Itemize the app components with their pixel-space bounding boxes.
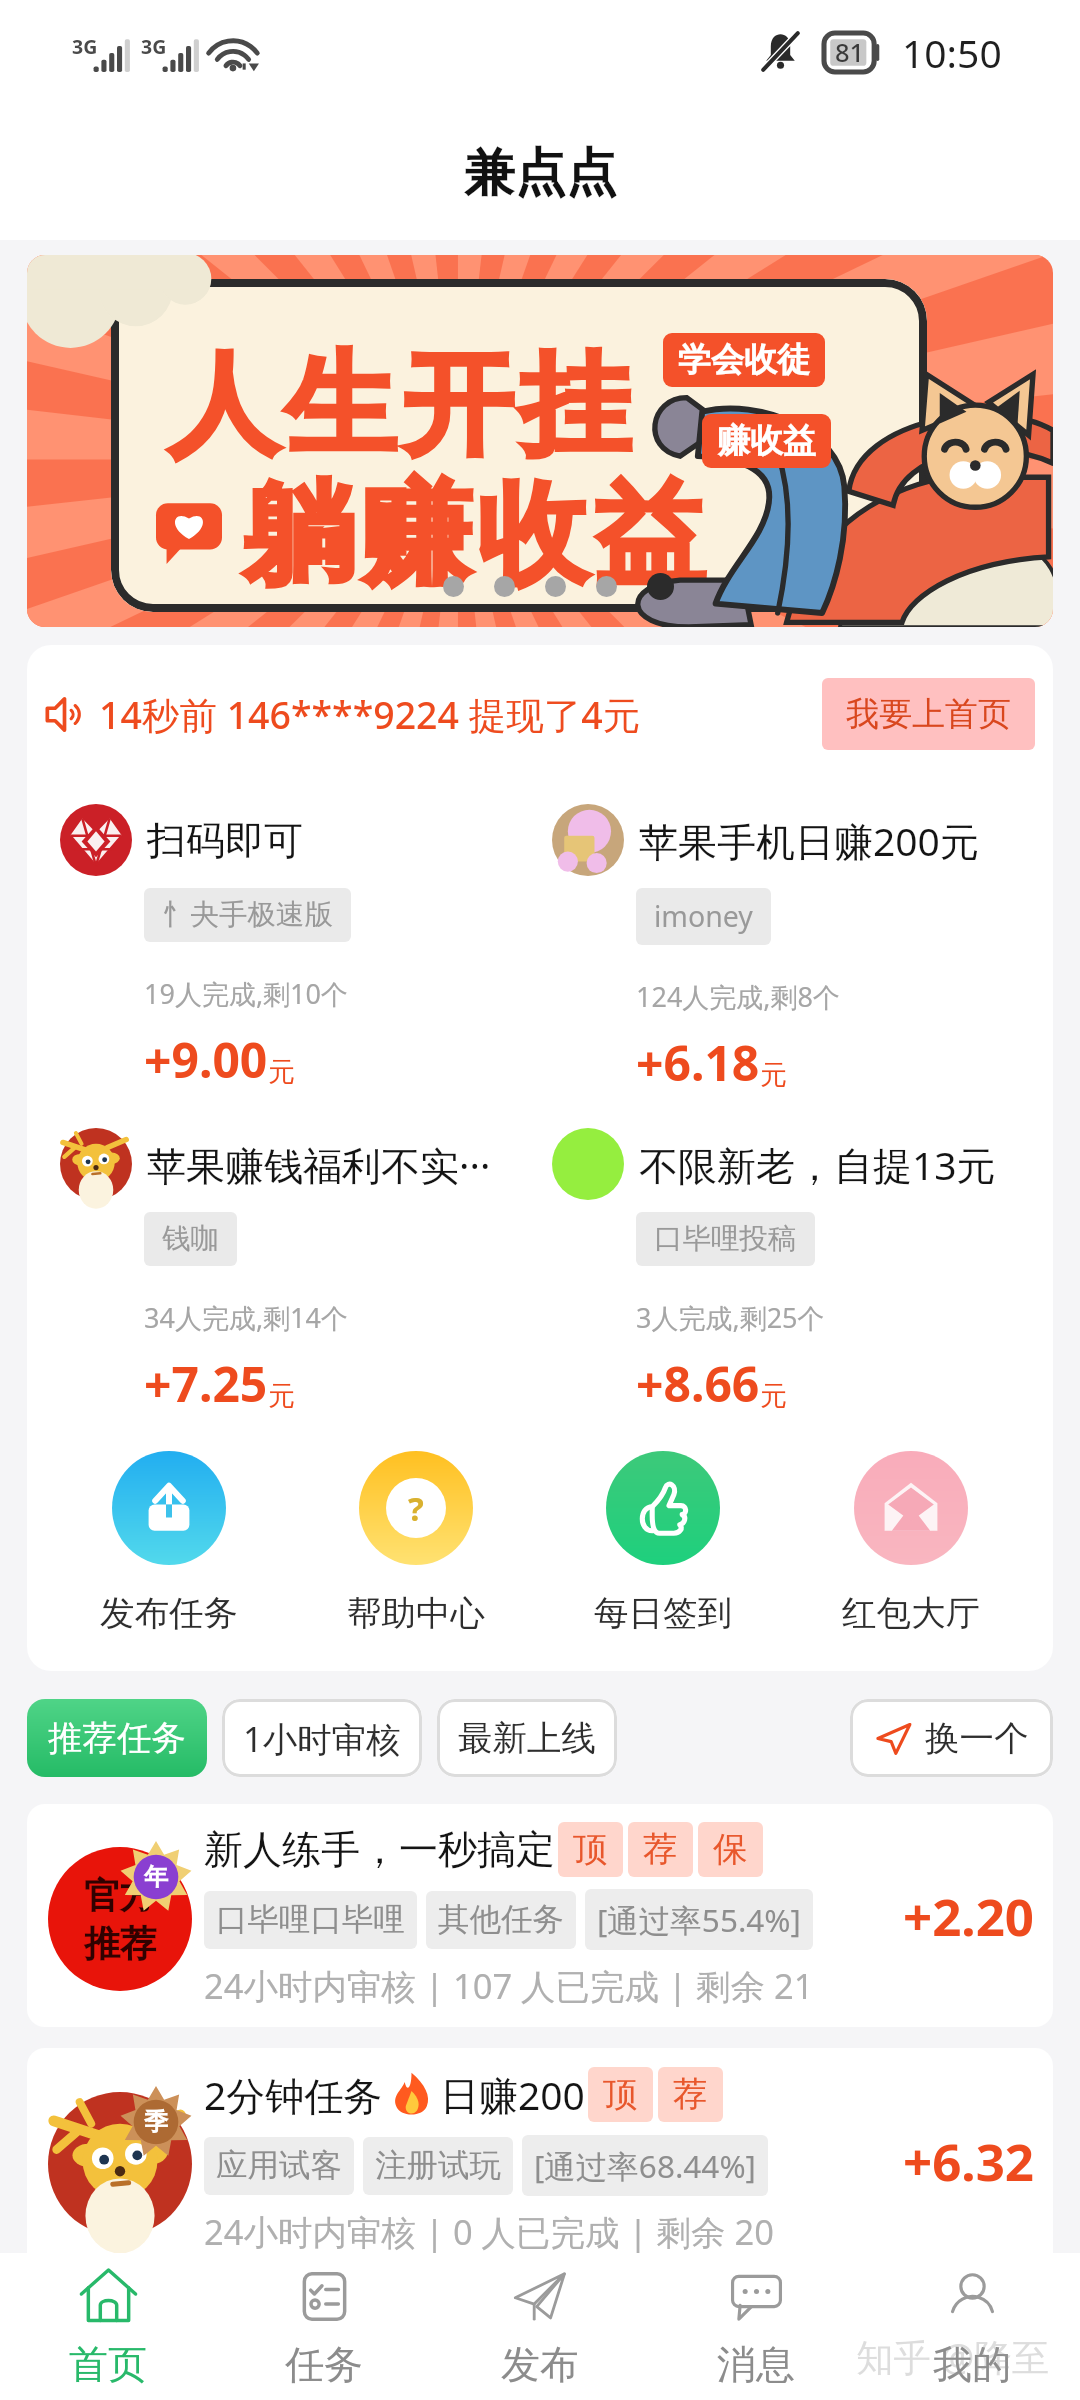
staticText: 苹果赚钱福利不实··· (147, 1138, 491, 1191)
button[interactable]: 苹果手机日赚200元 (519, 804, 1053, 1095)
button[interactable]: 苹果赚钱福利不实··· (27, 1128, 519, 1416)
staticText: 19人完成,剩10个 (144, 975, 349, 1012)
button[interactable]: 不限新老，自提13元 (519, 1128, 1053, 1416)
staticText: 钱咖 (162, 1221, 219, 1257)
staticText: 发布任务 (100, 1592, 238, 1635)
staticText: 荐 (673, 2073, 708, 2116)
other: Daily check in (606, 1451, 720, 1565)
staticText: 最新上线 (458, 1717, 596, 1760)
staticText: 帮助中心 (347, 1592, 485, 1635)
staticText: +7.25 (144, 1351, 268, 1416)
staticText: 知乎 @降至 (856, 2331, 1050, 2382)
staticText: 新人练手，一秒搞定 (204, 1825, 555, 1874)
staticText: 消息 (717, 2340, 795, 2389)
staticText: 人生开挂 (165, 336, 633, 476)
other: Publish task (112, 1451, 226, 1565)
staticText: imoney (654, 897, 753, 936)
staticText: 其他任务 (438, 1900, 564, 1940)
button[interactable]: 首页 (0, 2253, 216, 2400)
staticText: 3G (72, 33, 98, 60)
staticText: 34人完成,剩14个 (144, 1299, 349, 1336)
staticText: 赚收益 (717, 420, 816, 462)
staticText: 保 (713, 1828, 748, 1871)
staticText: 元 (760, 1379, 787, 1413)
staticText: 官方 (84, 1873, 156, 1918)
staticText: +6.32 (903, 2126, 1035, 2195)
staticText: 推荐任务 (48, 1717, 186, 1760)
staticText: 推荐 (84, 1921, 156, 1966)
button[interactable]: 我要上首页 (822, 678, 1035, 750)
staticText: 我的 (933, 2340, 1011, 2389)
staticText: 发布 (501, 2340, 579, 2389)
button[interactable]: 最新上线 (437, 1699, 617, 1777)
other: 发布 (509, 2265, 572, 2328)
staticText: +8.66 (636, 1351, 760, 1416)
button[interactable]: 官方 (27, 1804, 1053, 2027)
button[interactable]: 1小时审核 (222, 1699, 422, 1777)
button[interactable]: Red packet hall (787, 1451, 1035, 1635)
button[interactable]: 季 (27, 2048, 1053, 2273)
staticText: [通过率55.4%] (597, 1898, 801, 1941)
button[interactable]: 推荐任务 (27, 1699, 207, 1777)
staticText: 3G (141, 33, 167, 60)
staticText: 口毕哩投稿 (654, 1221, 797, 1257)
other: 消息 (725, 2265, 788, 2328)
button[interactable]: 我的 (864, 2253, 1080, 2400)
staticText: 元 (268, 1379, 295, 1413)
button[interactable]: 人生开挂 躺赚收益 横幅广告 (27, 255, 1053, 627)
staticText: 季 (144, 2107, 168, 2137)
staticText: 注册试玩 (375, 2146, 501, 2186)
staticText: ? (408, 1486, 424, 1531)
staticText: 24小时内审核 | 0 人已完成 | 剩余 20 (204, 2208, 775, 2255)
button[interactable]: 换一个 (850, 1699, 1053, 1777)
staticText: +9.00 (144, 1027, 268, 1092)
staticText: 日赚200 (440, 2068, 585, 2121)
other: 我的 (941, 2265, 1004, 2328)
staticText: 元 (760, 1058, 787, 1092)
staticText: 元 (268, 1055, 295, 1089)
staticText: 换一个 (925, 1717, 1029, 1760)
staticText: 3人完成,剩25个 (636, 1299, 825, 1336)
staticText: 学会收徒 (678, 339, 810, 381)
staticText: 苹果手机日赚200元 (639, 814, 979, 867)
button[interactable]: 发布 (432, 2253, 648, 2400)
button[interactable]: Publish task (45, 1451, 292, 1635)
staticText: 荐 (643, 1828, 678, 1871)
staticText: 年 (144, 1862, 168, 1892)
staticText: 兼点点 (464, 141, 617, 205)
staticText: 顶 (573, 1828, 608, 1871)
staticText: 81 (835, 35, 865, 70)
staticText: 我要上首页 (846, 693, 1011, 735)
staticText: 1小时审核 (243, 1715, 401, 1762)
staticText: 124人完成,剩8个 (636, 978, 841, 1015)
staticText: 红包大厅 (842, 1592, 980, 1635)
staticText: 每日签到 (594, 1592, 732, 1635)
staticText: 2分钟任务 (204, 2068, 383, 2121)
staticText: 应用试客 (216, 2146, 342, 2186)
button[interactable]: 任务 (216, 2253, 432, 2400)
staticText: 口毕哩口毕哩 (216, 1900, 405, 1940)
staticText: +6.18 (636, 1030, 760, 1095)
staticText: 首页 (69, 2340, 147, 2389)
other: 首页 (77, 2265, 140, 2328)
other: Red packet hall (854, 1451, 968, 1565)
staticText: 10:50 (902, 26, 1002, 79)
other: Help center (359, 1451, 473, 1565)
button[interactable]: Help center (292, 1451, 539, 1635)
button[interactable]: 扫码即可 (27, 804, 519, 1092)
staticText: +2.20 (903, 1881, 1035, 1950)
other: 任务 (293, 2265, 356, 2328)
staticText: 不限新老，自提13元 (639, 1138, 996, 1191)
staticText: 14秒前 146****9224 提现了4元 (99, 689, 641, 740)
staticText: 忄夬手极速版 (162, 897, 333, 933)
button[interactable]: Daily check in (539, 1451, 787, 1635)
button[interactable]: 消息 (648, 2253, 864, 2400)
staticText: [通过率68.44%] (534, 2144, 756, 2187)
staticText: 躺赚收益 (240, 465, 708, 605)
staticText: 任务 (285, 2340, 363, 2389)
staticText: 扫码即可 (147, 816, 303, 865)
staticText: 顶 (603, 2073, 638, 2116)
staticText: 24小时内审核 | 107 人已完成 | 剩余 21 (204, 1962, 814, 2009)
